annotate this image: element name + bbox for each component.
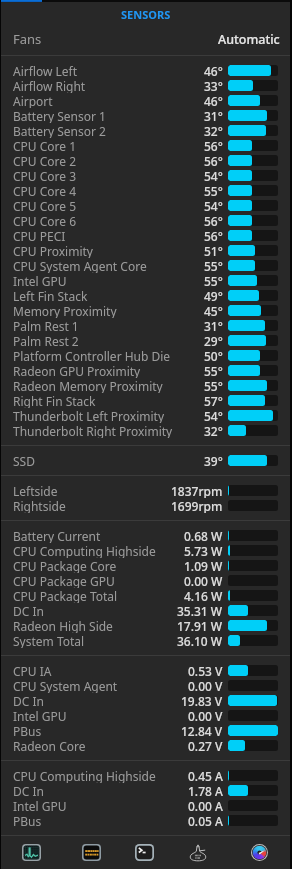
staticText: 36.10 W bbox=[177, 633, 223, 648]
button[interactable]: PBus bbox=[0, 813, 292, 828]
staticText: 46° bbox=[204, 63, 223, 78]
staticText: 54° bbox=[204, 408, 223, 423]
staticText: 55° bbox=[204, 183, 223, 198]
staticText: Thunderbolt Right Proximity bbox=[13, 423, 173, 438]
staticText: 45° bbox=[204, 303, 223, 318]
button[interactable]: CPU Computing Highside bbox=[0, 768, 292, 783]
button[interactable]: Intel GPU bbox=[0, 708, 292, 723]
button[interactable]: Homebrew bbox=[181, 836, 215, 869]
button[interactable]: Airport bbox=[0, 93, 292, 108]
staticText: Battery Sensor 1 bbox=[13, 108, 106, 123]
button[interactable]: Battery Sensor 2 bbox=[0, 123, 292, 138]
button[interactable]: Radeon High Side bbox=[0, 618, 292, 633]
button[interactable]: CPU Computing Highside bbox=[0, 543, 292, 558]
staticText: 29° bbox=[204, 333, 223, 348]
staticText: 0.45 A bbox=[188, 768, 223, 783]
staticText: CPU Computing Highside bbox=[13, 768, 156, 783]
staticText: CPU PECI bbox=[13, 228, 66, 243]
staticText: CPU System Agent bbox=[13, 678, 118, 693]
button[interactable]: CPU Package Core bbox=[0, 558, 292, 573]
button[interactable]: CPU Package GPU bbox=[0, 573, 292, 588]
staticText: DC In bbox=[13, 783, 44, 798]
button[interactable]: CPU Proximity bbox=[0, 243, 292, 258]
button[interactable]: CPU System Agent bbox=[0, 678, 292, 693]
staticText: 35.31 W bbox=[177, 603, 223, 618]
button[interactable]: CPU Core 3 bbox=[0, 168, 292, 183]
button[interactable]: CPU Core 6 bbox=[0, 213, 292, 228]
button[interactable]: CPU System Agent Core bbox=[0, 258, 292, 273]
button[interactable]: Battery Sensor 1 bbox=[0, 108, 292, 123]
button[interactable]: Airflow Right bbox=[0, 78, 292, 93]
button[interactable]: DC In bbox=[0, 783, 292, 798]
staticText: CPU Core 6 bbox=[13, 213, 77, 228]
staticText: Airflow Left bbox=[13, 63, 78, 78]
button[interactable]: SSD bbox=[0, 453, 292, 468]
button[interactable]: CPU PECI bbox=[0, 228, 292, 243]
button[interactable]: Palm Rest 2 bbox=[0, 333, 292, 348]
staticText: 54° bbox=[204, 168, 223, 183]
staticText: 56° bbox=[204, 138, 223, 153]
button[interactable]: Palm Rest 1 bbox=[0, 318, 292, 333]
staticText: Palm Rest 2 bbox=[13, 333, 79, 348]
staticText: 1.78 A bbox=[188, 783, 223, 798]
staticText: Rightside bbox=[13, 498, 66, 513]
staticText: 54° bbox=[204, 198, 223, 213]
button[interactable]: Radeon GPU Proximity bbox=[0, 363, 292, 378]
staticText: CPU Core 4 bbox=[13, 183, 77, 198]
staticText: Radeon GPU Proximity bbox=[13, 363, 141, 378]
staticText: 0.00 V bbox=[188, 708, 223, 723]
button[interactable]: Platform Controller Hub Die bbox=[0, 348, 292, 363]
button[interactable]: Leftside bbox=[0, 483, 292, 498]
staticText: CPU Package Total bbox=[13, 588, 118, 603]
button[interactable]: Intel GPU bbox=[0, 273, 292, 288]
button[interactable]: Battery Current bbox=[0, 528, 292, 543]
button[interactable]: Right Fin Stack bbox=[0, 393, 292, 408]
button[interactable]: CPU IA bbox=[0, 663, 292, 678]
staticText: 49° bbox=[204, 288, 223, 303]
staticText: 56° bbox=[204, 213, 223, 228]
button[interactable]: Terminal bbox=[127, 836, 161, 869]
staticText: PBus bbox=[13, 813, 42, 828]
button[interactable]: Rightside bbox=[0, 498, 292, 513]
button[interactable]: iStat Menus bbox=[242, 836, 276, 869]
staticText: 39° bbox=[204, 453, 223, 468]
button[interactable]: Intel GPU bbox=[0, 798, 292, 813]
staticText: DC In bbox=[13, 693, 44, 708]
button[interactable]: Fans bbox=[0, 30, 292, 55]
staticText: Fans bbox=[13, 30, 42, 48]
staticText: 1.09 W bbox=[184, 558, 223, 573]
button[interactable]: Radeon Memory Proximity bbox=[0, 378, 292, 393]
button[interactable]: Warnings bbox=[74, 836, 108, 869]
button[interactable]: SENSORS bbox=[113, 4, 179, 25]
staticText: 32° bbox=[204, 123, 223, 138]
button[interactable]: CPU Package Total bbox=[0, 588, 292, 603]
staticText: 56° bbox=[204, 153, 223, 168]
button[interactable]: Activity Monitor bbox=[14, 836, 48, 869]
button[interactable]: Thunderbolt Left Proximity bbox=[0, 408, 292, 423]
button[interactable]: Airflow Left bbox=[0, 63, 292, 78]
staticText: CPU Package Core bbox=[13, 558, 117, 573]
staticText: 1699rpm bbox=[171, 498, 223, 513]
button[interactable]: Memory Proximity bbox=[0, 303, 292, 318]
button[interactable]: DC In bbox=[0, 603, 292, 618]
staticText: 31° bbox=[204, 108, 223, 123]
button[interactable]: Left Fin Stack bbox=[0, 288, 292, 303]
button[interactable]: Thunderbolt Right Proximity bbox=[0, 423, 292, 438]
button[interactable]: CPU Core 5 bbox=[0, 198, 292, 213]
button[interactable]: Radeon Core bbox=[0, 738, 292, 753]
button[interactable]: DC In bbox=[0, 693, 292, 708]
button[interactable]: System Total bbox=[0, 633, 292, 648]
staticText: Leftside bbox=[13, 483, 58, 498]
button[interactable]: CPU Core 2 bbox=[0, 153, 292, 168]
button[interactable]: PBus bbox=[0, 723, 292, 738]
button[interactable]: CPU Core 1 bbox=[0, 138, 292, 153]
staticText: 5.73 W bbox=[184, 543, 223, 558]
staticText: CPU Core 3 bbox=[13, 168, 77, 183]
staticText: 0.05 A bbox=[188, 813, 223, 828]
staticText: 55° bbox=[204, 258, 223, 273]
staticText: 19.83 V bbox=[181, 693, 223, 708]
button[interactable]: CPU Core 4 bbox=[0, 183, 292, 198]
staticText: CPU Computing Highside bbox=[13, 543, 156, 558]
staticText: CPU Proximity bbox=[13, 243, 93, 258]
staticText: System Total bbox=[13, 633, 85, 648]
